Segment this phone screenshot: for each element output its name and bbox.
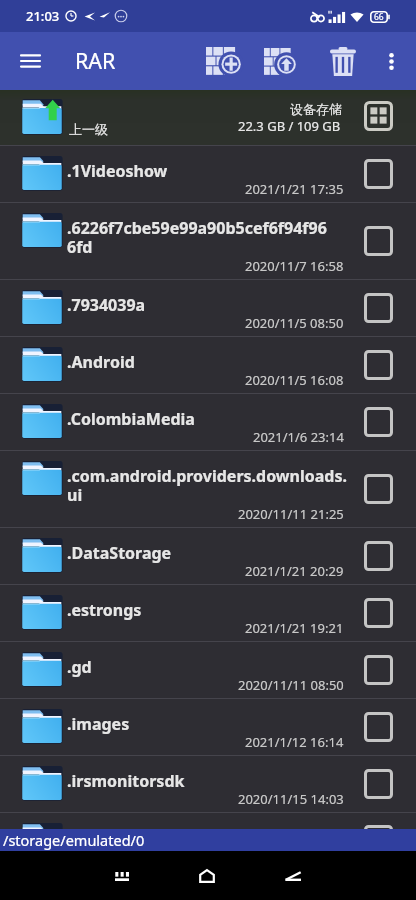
staticText: .7934039a [67,294,347,316]
button[interactable]: .com.android.providers.downloads. ui [0,451,416,528]
button[interactable]: .images [0,699,416,756]
staticText: .DataStorage [67,542,347,564]
staticText: 2020/11/5 08:50 [245,314,344,332]
button[interactable]: Select item [358,221,398,261]
button[interactable]: Select item [358,764,398,804]
button[interactable]: More options [373,37,409,85]
staticText: .irsmonitorsdk [67,770,347,792]
staticText: 2021/1/21 20:29 [245,562,344,580]
staticText: 2021/1/21 17:35 [245,180,344,198]
button[interactable]: Add to archive [202,37,246,85]
button[interactable]: .1Videoshow [0,146,416,203]
staticText: 2020/11/15 14:03 [238,790,344,808]
button[interactable]: .irsmonitorsdk [0,756,416,813]
button[interactable]: Select item [358,536,398,576]
button[interactable]: Select item [358,707,398,747]
staticText: 2021/1/6 23:14 [253,428,344,446]
staticText: 设备存储 [290,101,342,117]
staticText: 21:03 [26,7,60,25]
staticText: /storage/emulated/0 [3,830,145,850]
staticText: .com.android.providers.downloads. ui [67,465,347,506]
staticText: .Android [67,351,347,373]
button[interactable]: Home [183,854,231,898]
button[interactable]: .6226f7cbe59e99a90b5cef6f94f96 6fd [0,203,416,280]
button[interactable]: .ididdata [0,813,416,851]
button[interactable]: Select item [358,345,398,385]
button[interactable]: Select item [358,650,398,690]
staticText: .estrongs [67,599,347,621]
staticText: 2021/1/12 16:14 [245,733,344,751]
button[interactable]: .7934039a [0,280,416,337]
staticText: .ColombiaMedia [67,408,347,430]
button[interactable]: Back [269,854,317,898]
button[interactable]: Select item [358,469,398,509]
button[interactable]: .Android [0,337,416,394]
staticText: 2020/11/11 08:50 [238,676,344,694]
button[interactable]: Select item [358,402,398,442]
staticText: 2020/11/5 16:08 [245,371,344,389]
staticText: .ididdata [67,827,347,849]
staticText: .1Videoshow [67,160,347,182]
button[interactable]: .ColombiaMedia [0,394,416,451]
button[interactable]: /storage/emulated/0 [0,829,416,851]
staticText: 2020/11/15 14:03 [238,847,344,865]
button[interactable]: .gd [0,642,416,699]
button[interactable]: Change view [358,96,398,136]
staticText: 2020/11/11 21:25 [238,505,344,523]
button[interactable]: Recent apps [98,854,146,898]
button[interactable]: .estrongs [0,585,416,642]
button[interactable]: 上一级 [0,90,416,146]
staticText: .images [67,713,347,735]
button[interactable]: Select item [358,821,398,859]
staticText: 上一级 [69,121,108,137]
staticText: RAR [75,46,116,75]
button[interactable]: Delete [321,37,365,85]
staticText: .gd [67,656,347,678]
button[interactable]: Select item [358,288,398,328]
staticText: 2020/11/7 16:58 [245,257,344,275]
staticText: 2021/1/21 19:21 [245,619,344,637]
button[interactable]: .DataStorage [0,528,416,585]
staticText: .6226f7cbe59e99a90b5cef6f94f96 6fd [67,217,347,258]
staticText: 22.3 GB / 109 GB [238,117,341,135]
button[interactable]: Select item [358,154,398,194]
button[interactable]: Extract archive [258,37,302,85]
button[interactable]: Select item [358,593,398,633]
button[interactable]: Navigation menu [8,39,52,83]
staticText: 66 [374,11,384,23]
